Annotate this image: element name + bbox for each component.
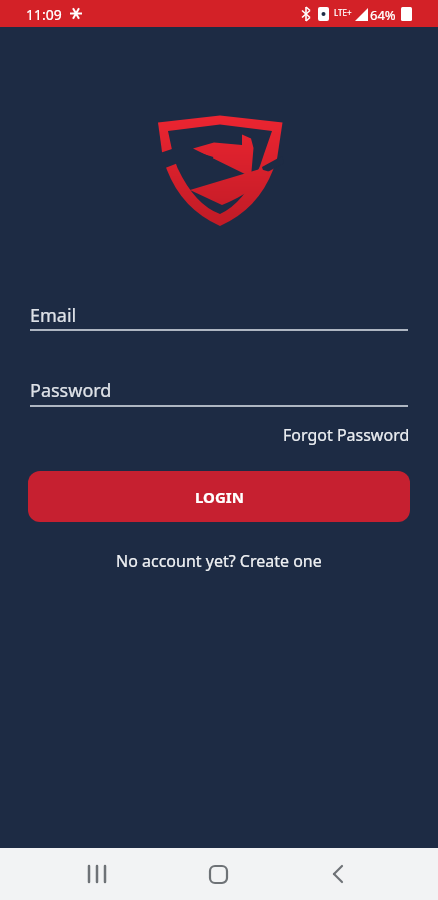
staticText: LOGIN — [195, 487, 244, 507]
button[interactable] — [0, 848, 146, 900]
staticText: LTE+ — [334, 7, 352, 18]
staticText: 11:09 — [26, 5, 62, 24]
button[interactable]: LOGIN — [28, 471, 410, 522]
button[interactable]: No account yet? Create one — [116, 550, 322, 572]
staticText: Password — [30, 378, 112, 403]
button[interactable] — [292, 848, 438, 900]
staticText: Email — [30, 303, 77, 328]
staticText: No account yet? Create one — [116, 550, 322, 572]
button[interactable] — [146, 848, 292, 900]
staticText: Forgot Password — [283, 424, 410, 446]
staticText: 64% — [370, 6, 396, 24]
button[interactable]: Forgot Password — [283, 424, 410, 446]
